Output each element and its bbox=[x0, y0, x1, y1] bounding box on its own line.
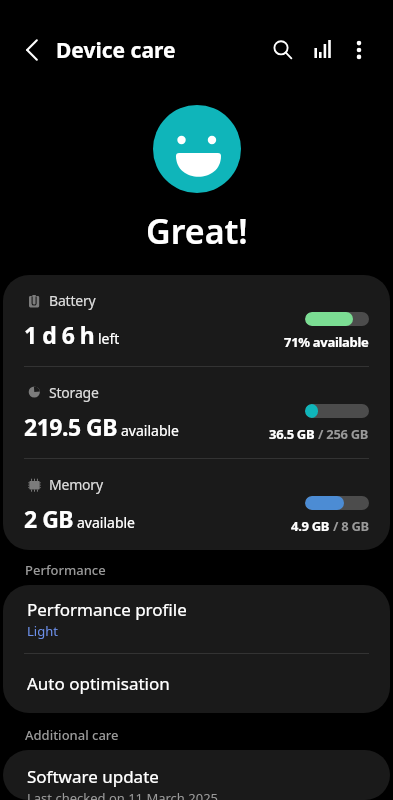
button[interactable]: Auto optimisation bbox=[3, 654, 390, 713]
button[interactable]: Search bbox=[263, 30, 303, 70]
button[interactable]: Battery bbox=[3, 275, 390, 366]
button[interactable]: Back bbox=[13, 31, 50, 68]
staticText: available bbox=[121, 421, 180, 440]
staticText: Additional care bbox=[25, 726, 119, 744]
staticText: Device care bbox=[56, 36, 176, 65]
staticText: 4.9 GB bbox=[291, 517, 330, 535]
button[interactable]: Usage statistics bbox=[313, 40, 333, 60]
staticText: 36.5 GB bbox=[269, 425, 315, 443]
button[interactable]: Memory bbox=[3, 459, 390, 550]
staticText: Performance bbox=[25, 561, 106, 579]
staticText: Last checked on 11 March 2025 bbox=[27, 789, 219, 800]
staticText: 1 d 6 h bbox=[24, 319, 95, 350]
staticText: 219.5 GB bbox=[24, 411, 118, 442]
staticText: Great! bbox=[146, 208, 248, 254]
staticText: left bbox=[98, 329, 120, 348]
staticText: Storage bbox=[49, 383, 99, 402]
button[interactable]: Performance profile bbox=[3, 585, 390, 653]
staticText: Memory bbox=[49, 475, 103, 494]
staticText: Auto optimisation bbox=[27, 672, 170, 695]
staticText: 2 GB bbox=[24, 503, 74, 534]
staticText: Performance profile bbox=[27, 598, 187, 621]
staticText: / 256 GB bbox=[315, 425, 369, 443]
button[interactable]: Storage bbox=[3, 367, 390, 458]
staticText: Light bbox=[27, 622, 58, 640]
staticText: 71% available bbox=[284, 333, 369, 351]
staticText: / 8 GB bbox=[330, 517, 369, 535]
staticText: available bbox=[77, 513, 136, 532]
button[interactable]: More options bbox=[349, 40, 369, 60]
staticText: Battery bbox=[49, 291, 96, 310]
staticText: Software update bbox=[27, 765, 159, 788]
button[interactable]: Software update bbox=[3, 750, 390, 800]
